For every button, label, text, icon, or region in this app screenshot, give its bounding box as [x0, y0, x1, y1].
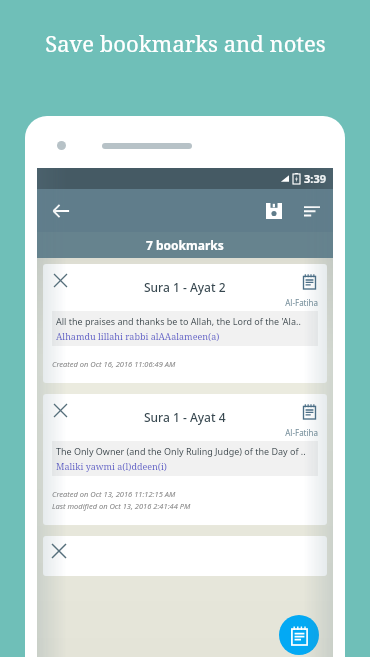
button[interactable]: Sort: [299, 198, 325, 224]
button[interactable]: Remove bookmark: [52, 272, 68, 288]
button[interactable]: Remove bookmark: [43, 264, 327, 383]
staticText: The Only Owner (and the Only Ruling Judg…: [56, 445, 306, 457]
button[interactable]: Remove bookmark: [43, 394, 327, 525]
button[interactable]: Save: [261, 198, 287, 224]
button[interactable]: Note: [300, 272, 318, 290]
button[interactable]: Remove bookmark: [52, 402, 68, 418]
staticText: All the praises and thanks be to Allah, …: [56, 315, 301, 327]
staticText: Al-Fatiha: [52, 297, 318, 308]
button[interactable]: Back: [46, 196, 76, 226]
staticText: Al-Fatiha: [52, 427, 318, 438]
staticText: Alhamdu lillahi rabbi alAAalameen(a): [56, 330, 220, 342]
staticText: 7 bookmarks: [146, 237, 224, 253]
staticText: 3:39: [304, 171, 326, 186]
staticText: Created on Oct 13, 2016 11:12:15 AM: [52, 489, 176, 499]
staticText: Sura 1 - Ayat 4: [144, 409, 226, 425]
staticText: Save bookmarks and notes: [45, 28, 326, 58]
staticText: Created on Oct 16, 2016 11:06:49 AM: [52, 359, 176, 369]
staticText: Maliki yawmi a(l)ddeen(i): [56, 460, 167, 472]
staticText: Sura 1 - Ayat 2: [144, 279, 226, 295]
staticText: Last modified on Oct 13, 2016 2:41:44 PM: [52, 501, 191, 511]
button[interactable]: Add note: [279, 615, 319, 655]
button[interactable]: Note: [300, 402, 318, 420]
button[interactable]: [43, 536, 327, 576]
